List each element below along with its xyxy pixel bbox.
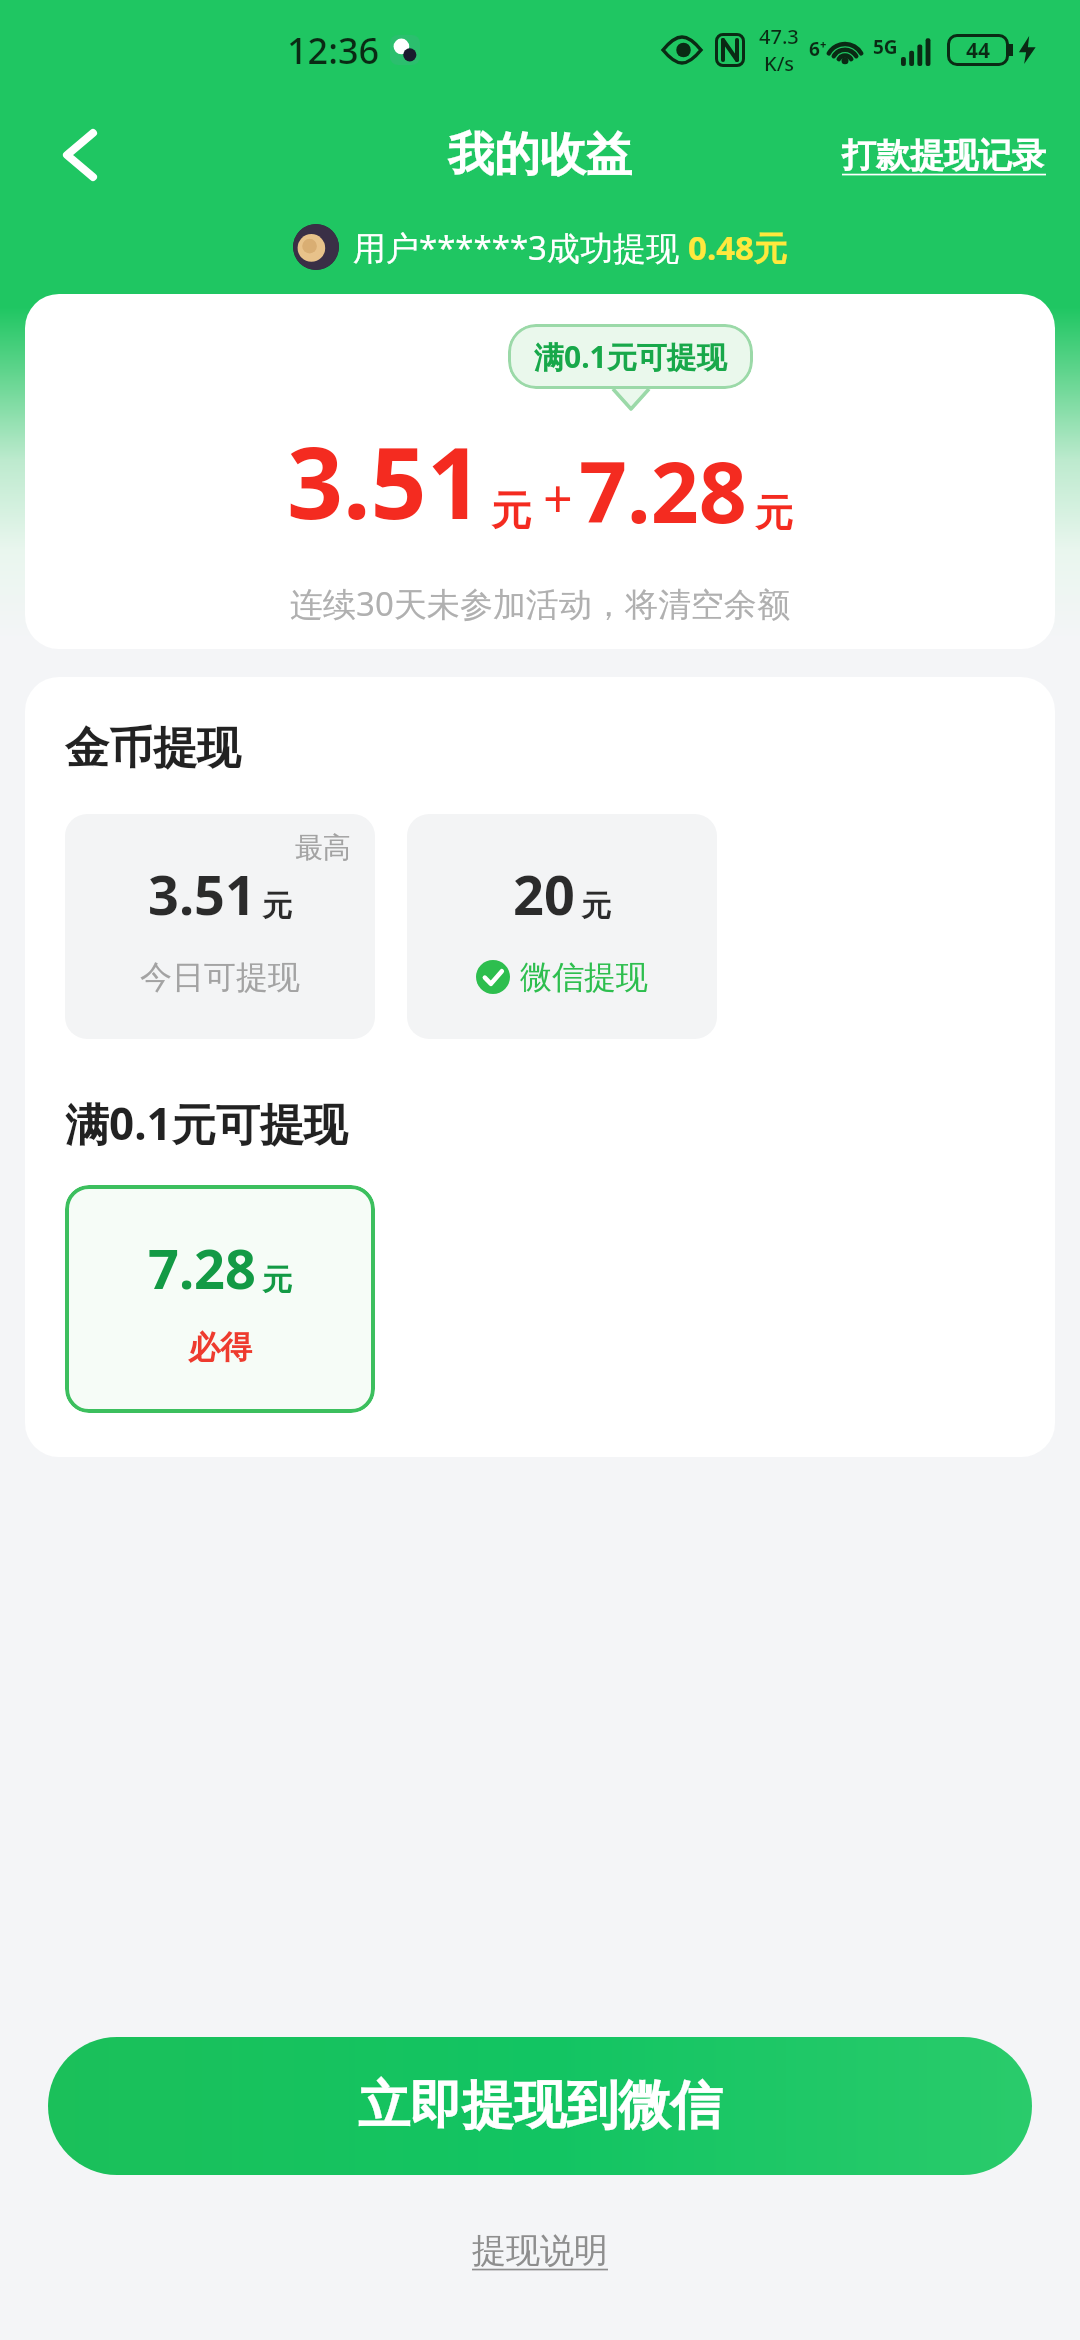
staticText: 5G (873, 34, 898, 60)
staticText: 0.48元 (688, 225, 787, 270)
staticText: 6⁺ (809, 36, 827, 62)
staticText: 今日可提现 (140, 957, 300, 997)
staticText: 元 (755, 489, 793, 537)
staticText: 20 (513, 857, 575, 931)
button[interactable]: 提现说明 (462, 2223, 618, 2278)
staticText: 连续30天未参加活动，将清空余额 (290, 581, 790, 626)
staticText: 7.28 (579, 433, 747, 547)
button[interactable]: 立即提现到微信 (48, 2037, 1032, 2175)
staticText: 金币提现 (65, 721, 241, 776)
staticText: 满0.1元可提现 (65, 1093, 348, 1153)
staticText: 打款提现记录 (842, 134, 1046, 177)
staticText: 3.51 (287, 414, 483, 547)
staticText: 我的收益 (448, 126, 632, 184)
staticText: 47.3 (759, 23, 799, 50)
button[interactable]: 20 (407, 814, 717, 1039)
staticText: 元 (262, 1261, 292, 1299)
staticText: 3.51 (148, 857, 256, 931)
button[interactable]: 满0.1元可提现 (25, 294, 1055, 649)
button[interactable]: 打款提现记录 (834, 124, 1054, 187)
button[interactable]: 用户******3成功提现 (0, 224, 1080, 270)
staticText: 用户******3成功提现 (353, 225, 688, 270)
staticText: 提现说明 (472, 2229, 608, 2272)
staticText: 微信提现 (520, 957, 648, 997)
button[interactable]: 7.28 (65, 1185, 375, 1413)
staticText: 元 (491, 485, 531, 535)
button[interactable]: 最高 (65, 814, 375, 1039)
staticText: 元 (581, 887, 611, 925)
staticText: 7.28 (148, 1231, 256, 1305)
staticText: 44 (966, 36, 991, 65)
staticText: K/s (764, 50, 795, 77)
staticText: 12:36 (287, 26, 380, 75)
staticText: 立即提现到微信 (358, 2073, 722, 2139)
staticText: 满0.1元可提现 (534, 336, 727, 377)
staticText: 元 (262, 887, 292, 925)
staticText: 最高 (295, 830, 351, 865)
staticText: 必得 (188, 1327, 252, 1367)
staticText: + (543, 462, 573, 533)
button[interactable]: Back (40, 115, 120, 195)
